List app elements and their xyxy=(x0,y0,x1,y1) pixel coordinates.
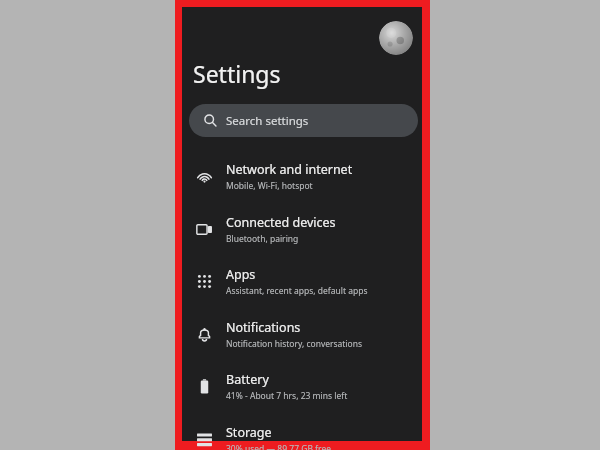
staticText: Storage xyxy=(226,424,272,441)
staticText: Notification history, conversations xyxy=(226,338,363,350)
staticText: Network and internet xyxy=(226,161,353,178)
staticText: Settings xyxy=(193,58,281,89)
staticText: Connected devices xyxy=(226,214,336,231)
button[interactable]: Battery xyxy=(182,360,422,412)
button[interactable]: Notifications xyxy=(182,308,422,360)
button[interactable]: Connected devices xyxy=(182,203,422,255)
button[interactable]: Network and internet xyxy=(182,150,422,202)
staticText: Bluetooth, pairing xyxy=(226,233,299,245)
staticText: Apps xyxy=(226,266,256,283)
staticText: Search settings xyxy=(226,113,309,129)
button[interactable]: Apps xyxy=(182,255,422,307)
staticText: 41% - About 7 hrs, 23 mins left xyxy=(226,390,348,402)
staticText: Notifications xyxy=(226,319,301,336)
staticText: Battery xyxy=(226,371,269,388)
staticText: Assistant, recent apps, default apps xyxy=(226,285,368,297)
button[interactable]: Search settings xyxy=(189,104,418,137)
staticText: Mobile, Wi-Fi, hotspot xyxy=(226,180,313,192)
button[interactable]: Account xyxy=(379,21,413,55)
button[interactable]: Storage xyxy=(182,413,422,450)
staticText: 30% used — 89.77 GB free xyxy=(226,443,331,450)
